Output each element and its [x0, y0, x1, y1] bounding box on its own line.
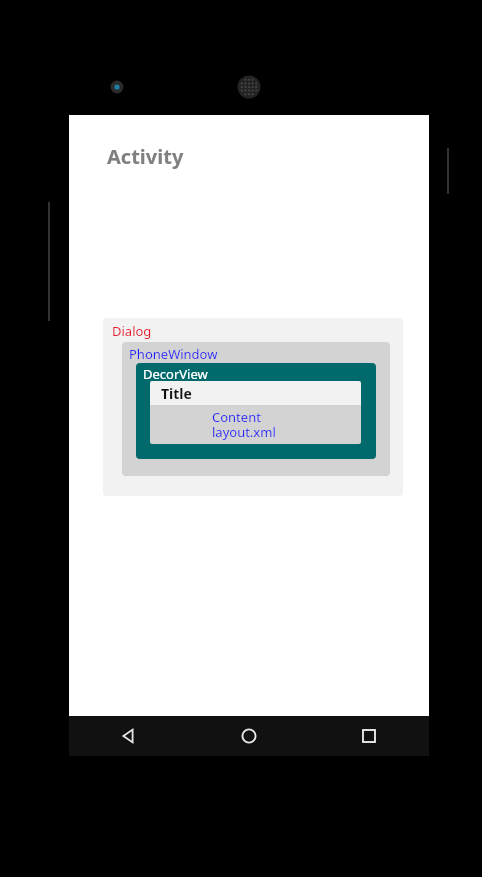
staticText: DecorView — [143, 365, 208, 383]
staticText: Title — [161, 384, 192, 403]
staticText: PhoneWindow — [129, 345, 218, 363]
staticText: Activity — [107, 143, 184, 170]
button[interactable]: Dialog — [103, 318, 403, 496]
button[interactable]: Title — [150, 381, 361, 405]
staticText: Dialog — [112, 322, 152, 340]
button[interactable]: Home — [189, 716, 309, 756]
button[interactable]: Back — [69, 716, 189, 756]
staticText: Content layout.xml — [212, 408, 276, 441]
button[interactable]: Recent apps — [309, 716, 429, 756]
button[interactable]: DecorView — [136, 363, 376, 459]
button[interactable]: PhoneWindow — [122, 342, 390, 476]
button[interactable]: Content layout.xml — [150, 405, 361, 444]
